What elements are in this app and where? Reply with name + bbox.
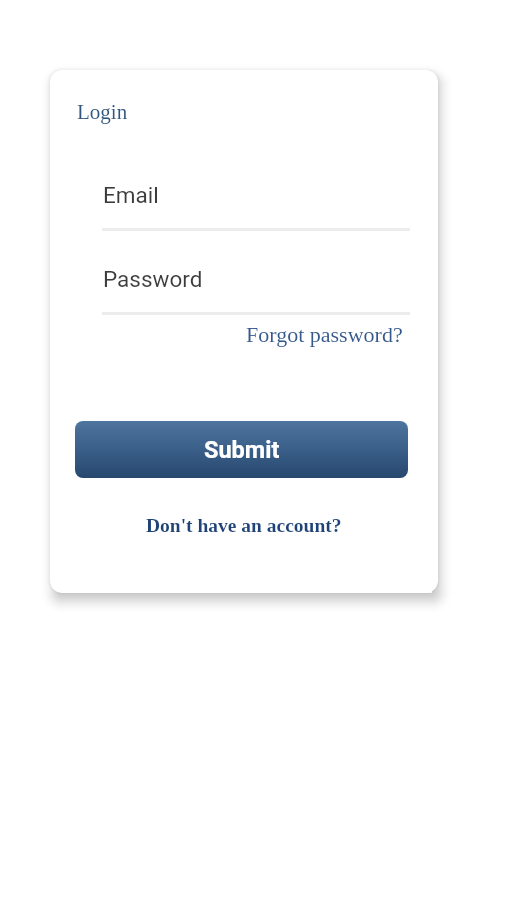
staticText: Email [103, 182, 159, 208]
staticText: Submit [204, 436, 280, 464]
button[interactable]: Forgot password? [246, 322, 403, 346]
staticText: Login [77, 100, 128, 123]
button[interactable]: Don't have an account? [146, 515, 342, 537]
staticText: Password [103, 266, 203, 292]
button[interactable]: Submit [75, 421, 408, 478]
